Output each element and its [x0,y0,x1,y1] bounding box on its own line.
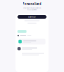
button[interactable] [18,39,45,44]
button[interactable] [15,47,48,50]
staticText: Smart plans that adapt to how [23,7,41,9]
button[interactable]: Build my plan [17,15,46,19]
staticText: Build my plan [28,16,36,18]
staticText: you actually live [27,9,37,11]
staticText: Personalized [22,2,41,6]
